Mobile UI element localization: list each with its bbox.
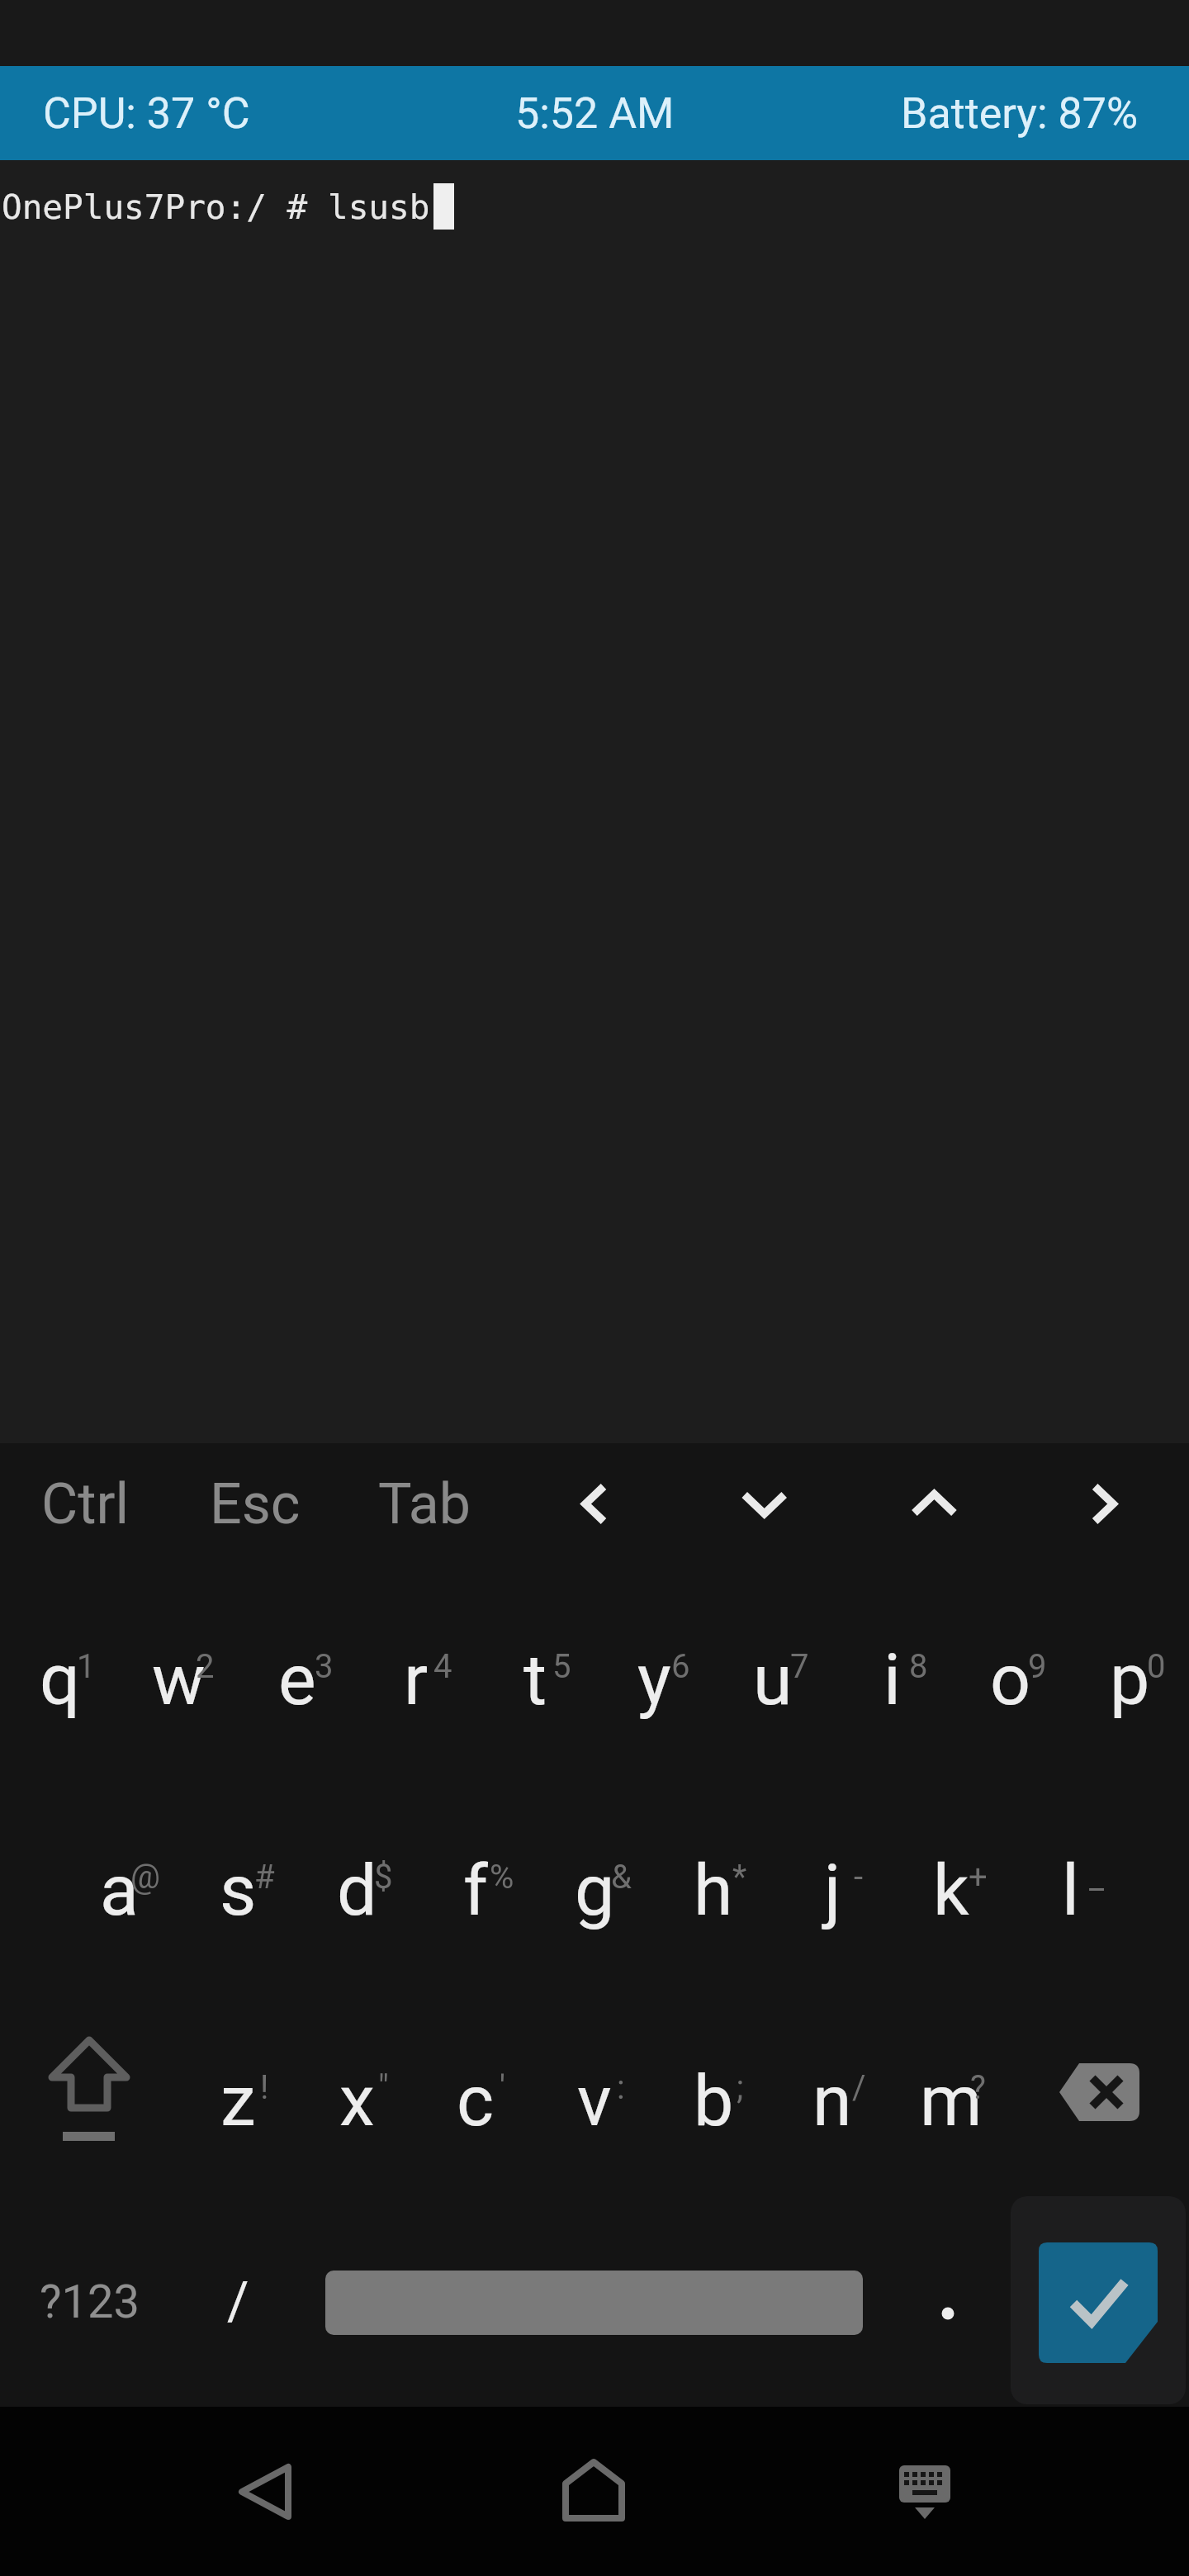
staticText: + — [969, 1858, 988, 1896]
staticText: ; — [737, 2068, 744, 2107]
staticText: OnePlus7Pro:/ # lsusb — [2, 187, 430, 227]
staticText: j — [824, 1849, 841, 1932]
staticText: _ — [1089, 1858, 1105, 1896]
staticText: w — [152, 1638, 206, 1721]
button[interactable]: l — [1011, 1775, 1130, 1986]
staticText: g — [575, 1849, 615, 1932]
button[interactable]: z — [178, 1986, 297, 2196]
button[interactable]: b — [654, 1986, 773, 2196]
staticText: 6 — [671, 1647, 690, 1686]
staticText: h — [694, 1849, 733, 1932]
button[interactable] — [862, 2429, 986, 2553]
staticText: i — [883, 1638, 901, 1721]
button[interactable]: h — [654, 1775, 773, 1986]
staticText: Battery: 87% — [901, 88, 1138, 139]
staticText: 5 — [552, 1647, 571, 1686]
button[interactable]: / — [178, 2196, 297, 2407]
button[interactable] — [203, 2429, 327, 2553]
staticText: CPU: 37 °C — [43, 88, 250, 139]
button[interactable]: o — [951, 1565, 1070, 1775]
button[interactable]: r — [357, 1565, 476, 1775]
staticText: 2 — [196, 1647, 215, 1686]
staticText: 4 — [433, 1647, 452, 1686]
button[interactable] — [892, 2196, 1011, 2407]
staticText: - — [854, 1858, 864, 1896]
staticText: 9 — [1028, 1647, 1047, 1686]
button[interactable] — [1019, 1443, 1189, 1565]
staticText: y — [637, 1638, 671, 1721]
staticText: r — [404, 1638, 429, 1721]
staticText: 1 — [77, 1647, 96, 1686]
staticText: & — [611, 1858, 632, 1896]
button[interactable]: m — [892, 1986, 1011, 2196]
staticText: b — [694, 2059, 734, 2143]
staticText: / — [227, 2271, 249, 2332]
staticText: p — [1110, 1638, 1150, 1721]
staticText: / — [852, 2068, 866, 2107]
staticText: ! — [260, 2068, 269, 2107]
staticText: 5:52 AM — [515, 88, 675, 139]
staticText: 0 — [1147, 1647, 1166, 1686]
button[interactable]: s — [178, 1775, 297, 1986]
button[interactable] — [1011, 2196, 1186, 2404]
staticText: ?123 — [40, 2275, 140, 2329]
staticText: : — [617, 2068, 625, 2107]
staticText: s — [220, 1849, 257, 1932]
button[interactable]: k — [892, 1775, 1011, 1986]
staticText: 7 — [790, 1647, 809, 1686]
staticText: $ — [374, 1858, 393, 1896]
staticText: 3 — [315, 1647, 334, 1686]
button[interactable] — [509, 1443, 680, 1565]
button[interactable] — [532, 2429, 656, 2553]
staticText: a — [100, 1849, 139, 1932]
button[interactable] — [850, 1443, 1020, 1565]
staticText: e — [278, 1638, 316, 1721]
staticText: Tab — [378, 1471, 471, 1537]
button[interactable]: p — [1070, 1565, 1189, 1775]
button[interactable]: v — [535, 1986, 654, 2196]
button[interactable]: j — [773, 1775, 892, 1986]
button[interactable]: d — [297, 1775, 416, 1986]
staticText: x — [339, 2059, 375, 2143]
button[interactable] — [0, 1986, 178, 2196]
staticText: v — [577, 2059, 612, 2143]
staticText: l — [1062, 1849, 1079, 1932]
staticText: " — [378, 2068, 389, 2107]
button[interactable]: w — [119, 1565, 238, 1775]
button[interactable]: Tab — [339, 1443, 509, 1565]
button[interactable] — [325, 2271, 863, 2335]
staticText: d — [337, 1849, 377, 1932]
button[interactable]: a — [59, 1775, 178, 1986]
button[interactable]: e — [238, 1565, 357, 1775]
button[interactable] — [680, 1443, 850, 1565]
button[interactable]: y — [594, 1565, 713, 1775]
button[interactable]: c — [416, 1986, 535, 2196]
staticText: @ — [130, 1858, 160, 1896]
staticText: % — [490, 1858, 514, 1896]
staticText: o — [990, 1638, 1031, 1721]
staticText: ' — [500, 2068, 505, 2107]
button[interactable]: Esc — [170, 1443, 340, 1565]
staticText: * — [732, 1858, 747, 1896]
staticText: f — [463, 1849, 488, 1932]
staticText: 8 — [909, 1647, 928, 1686]
button[interactable]: f — [416, 1775, 535, 1986]
staticText: ? — [970, 2068, 986, 2107]
button[interactable]: n — [773, 1986, 892, 2196]
staticText: q — [40, 1638, 80, 1721]
staticText: # — [254, 1858, 275, 1896]
button[interactable]: u — [713, 1565, 832, 1775]
staticText: t — [523, 1638, 547, 1721]
staticText: m — [920, 2059, 983, 2143]
staticText: c — [457, 2059, 495, 2143]
button[interactable]: Ctrl — [0, 1443, 170, 1565]
button[interactable]: q — [0, 1565, 119, 1775]
button[interactable] — [1011, 1986, 1189, 2196]
button[interactable]: g — [535, 1775, 654, 1986]
button[interactable]: x — [297, 1986, 416, 2196]
staticText: n — [812, 2059, 852, 2143]
button[interactable]: t — [476, 1565, 594, 1775]
button[interactable]: ?123 — [0, 2196, 178, 2407]
button[interactable]: i — [832, 1565, 951, 1775]
staticText: u — [753, 1638, 793, 1721]
